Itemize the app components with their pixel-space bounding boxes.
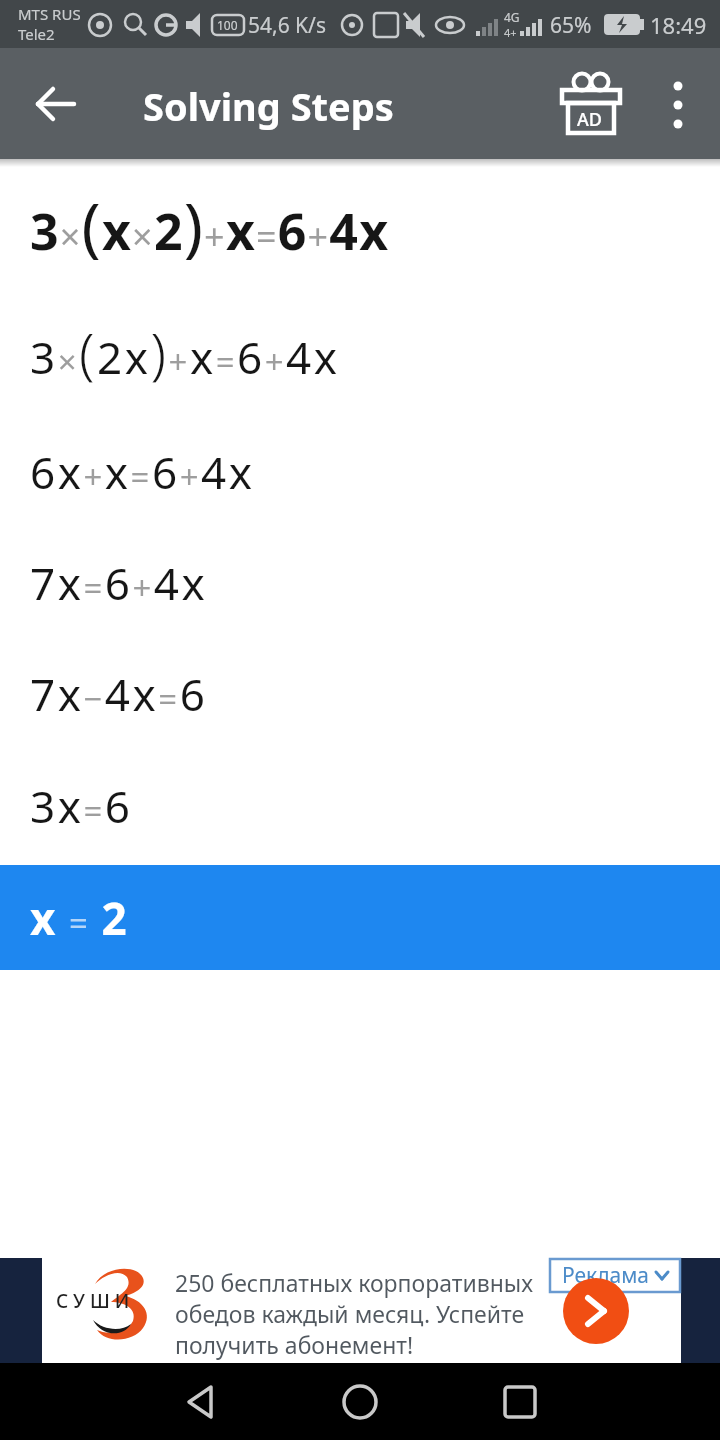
staticText: 4G [504,9,520,25]
button[interactable]: AD [556,70,628,142]
staticText: x = 2 [30,888,130,948]
button[interactable] [563,1278,629,1344]
staticText: Tele2 [18,24,55,44]
staticText: 65% [550,11,592,40]
button[interactable] [280,1363,440,1440]
staticText: обедов каждый месяц. Успейте [175,1298,525,1329]
staticText: 6x+x=6+4x [30,442,255,502]
button[interactable] [440,1363,600,1440]
button[interactable] [650,70,706,140]
button[interactable]: 18:49 [650,10,707,40]
button[interactable] [0,48,112,159]
staticText: 100 [217,17,238,33]
staticText: Solving Steps [143,80,394,132]
button[interactable] [120,1363,280,1440]
staticText: 7x=6+4x [30,553,208,613]
staticText: MTS RUS [18,4,81,24]
staticText: AD [577,107,602,132]
staticText: получить абонемент! [175,1329,414,1360]
staticText: 3×(x×2)+x=6+4x [30,182,390,269]
staticText: 250 бесплатных корпоративных [175,1267,534,1298]
button[interactable]: x = 2 [0,865,720,970]
staticText: 3x=6 [30,776,133,836]
staticText: 7x−4x=6 [30,664,208,724]
staticText: 3×(2x)+x=6+4x [30,314,340,390]
staticText: С У Ш И [56,1288,130,1314]
staticText: 4+ [504,25,517,40]
staticText: 54,6 K/s [248,11,326,40]
staticText: Реклама [562,1261,650,1290]
button[interactable]: С У Ш И [42,1258,681,1363]
button[interactable]: Реклама [550,1259,680,1292]
